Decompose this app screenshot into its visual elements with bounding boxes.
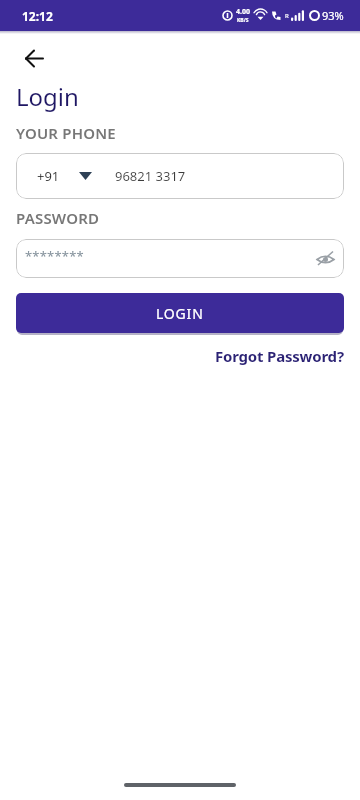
button[interactable]: +91 <box>16 153 344 199</box>
button[interactable] <box>316 251 335 266</box>
staticText: YOUR PHONE <box>16 123 116 143</box>
staticText: R <box>285 12 289 20</box>
button[interactable]: ******** <box>16 239 344 278</box>
button[interactable]: LOGIN <box>16 293 344 333</box>
button[interactable] <box>16 40 52 76</box>
staticText: PASSWORD <box>16 208 100 228</box>
staticText: 12:12 <box>22 8 53 24</box>
staticText: ******** <box>25 247 84 265</box>
staticText: 93% <box>322 8 344 23</box>
staticText: +91 <box>37 167 60 185</box>
button[interactable]: Forgot Password? <box>215 346 344 366</box>
staticText: KB/S <box>237 17 249 24</box>
staticText: 4.00 <box>236 7 250 17</box>
staticText: Login <box>16 80 79 113</box>
staticText: LOGIN <box>156 304 204 323</box>
staticText: 96821 3317 <box>115 167 186 185</box>
